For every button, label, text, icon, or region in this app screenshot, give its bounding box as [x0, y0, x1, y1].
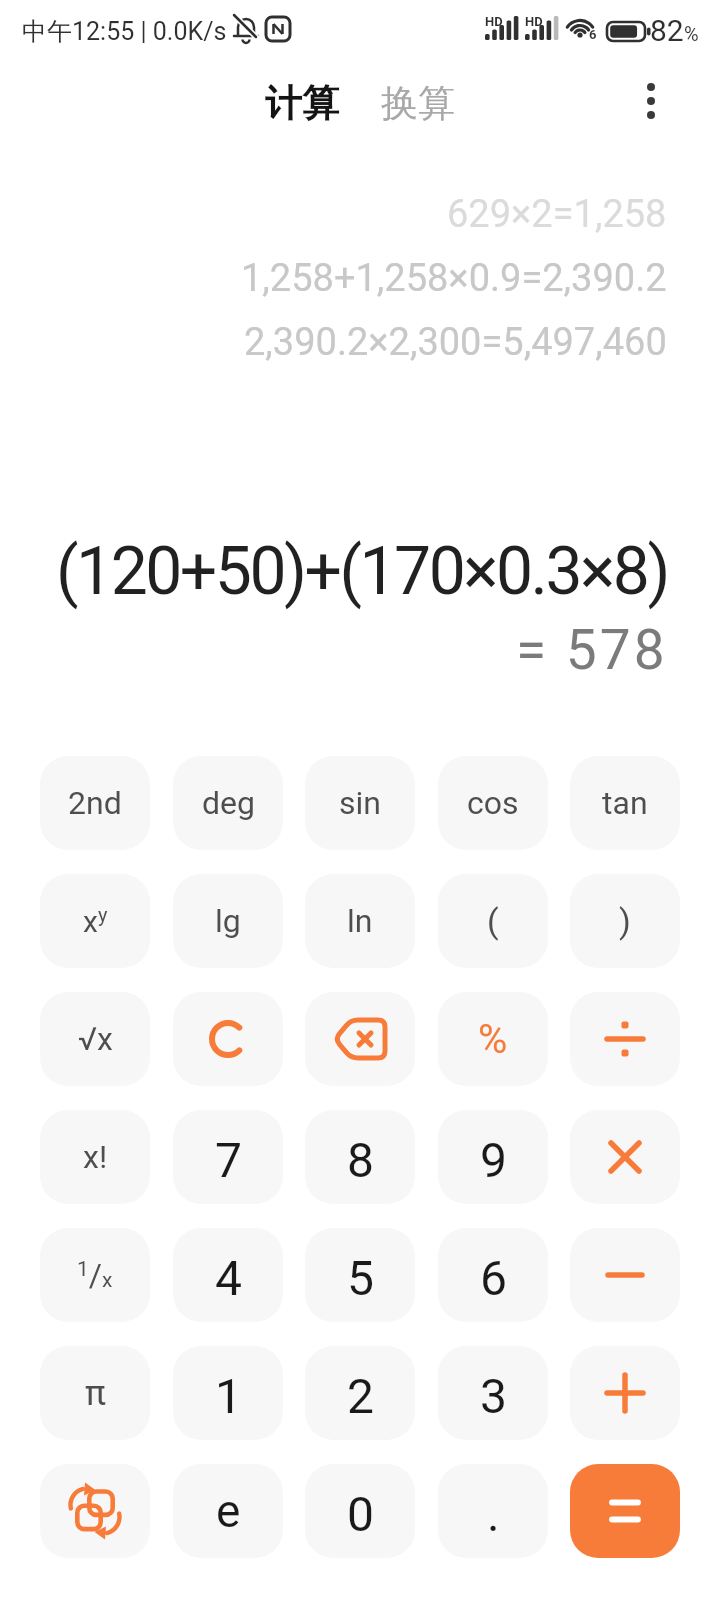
- staticText: sin: [339, 784, 381, 822]
- staticText: π: [85, 1373, 106, 1414]
- staticText: 1,258+1,258×0.9=2,390.2: [241, 256, 667, 301]
- button[interactable]: 8: [305, 1110, 415, 1204]
- button[interactable]: [570, 1464, 680, 1558]
- staticText: HD: [485, 14, 503, 29]
- button[interactable]: 9: [438, 1110, 548, 1204]
- staticText: 6: [589, 27, 597, 42]
- staticText: deg: [202, 784, 255, 822]
- button[interactable]: √x: [40, 992, 150, 1086]
- staticText: 计算: [265, 80, 339, 127]
- staticText: 629×2=1,258: [447, 192, 667, 237]
- staticText: 0: [347, 1486, 374, 1542]
- staticText: 1/x: [77, 1256, 113, 1294]
- staticText: 2: [347, 1368, 374, 1424]
- button[interactable]: .: [438, 1464, 548, 1558]
- staticText: e: [216, 1484, 241, 1538]
- button[interactable]: e: [173, 1464, 283, 1558]
- staticText: (120+50)+(170×0.3×8): [56, 533, 668, 610]
- button[interactable]: lg: [173, 874, 283, 968]
- staticText: lg: [215, 902, 241, 940]
- staticText: 5: [347, 1250, 374, 1306]
- button[interactable]: 1/x: [40, 1228, 150, 1322]
- button[interactable]: [630, 80, 672, 122]
- staticText: 9: [480, 1132, 507, 1188]
- button[interactable]: [570, 992, 680, 1086]
- button[interactable]: deg: [173, 756, 283, 850]
- button[interactable]: ): [570, 874, 680, 968]
- button[interactable]: 2nd: [40, 756, 150, 850]
- staticText: (: [487, 901, 499, 941]
- staticText: 6: [480, 1250, 507, 1306]
- button[interactable]: π: [40, 1346, 150, 1440]
- staticText: %: [478, 1016, 508, 1063]
- staticText: 1: [215, 1368, 242, 1424]
- staticText: xy: [83, 903, 108, 939]
- button[interactable]: 7: [173, 1110, 283, 1204]
- staticText: 3: [480, 1368, 507, 1424]
- button[interactable]: [570, 1228, 680, 1322]
- staticText: 7: [215, 1132, 242, 1188]
- staticText: x!: [83, 1138, 108, 1176]
- button[interactable]: (: [438, 874, 548, 968]
- staticText: .: [487, 1486, 500, 1542]
- button[interactable]: sin: [305, 756, 415, 850]
- staticText: ): [619, 901, 631, 941]
- button[interactable]: 计算: [265, 80, 339, 127]
- button[interactable]: 2: [305, 1346, 415, 1440]
- button[interactable]: 换算: [381, 80, 455, 127]
- button[interactable]: tan: [570, 756, 680, 850]
- staticText: tan: [602, 784, 648, 822]
- staticText: 2nd: [68, 784, 122, 822]
- staticText: HD: [525, 14, 543, 29]
- staticText: = 578: [516, 618, 668, 682]
- button[interactable]: cos: [438, 756, 548, 850]
- staticText: cos: [467, 784, 519, 822]
- staticText: 8: [347, 1132, 374, 1188]
- button[interactable]: 3: [438, 1346, 548, 1440]
- staticText: %: [684, 22, 699, 45]
- button[interactable]: x!: [40, 1110, 150, 1204]
- button[interactable]: [570, 1346, 680, 1440]
- staticText: ln: [347, 902, 373, 940]
- staticText: 4: [215, 1250, 242, 1306]
- button[interactable]: [570, 1110, 680, 1204]
- button[interactable]: [173, 992, 283, 1086]
- button[interactable]: 4: [173, 1228, 283, 1322]
- staticText: 82: [650, 13, 684, 48]
- button[interactable]: ln: [305, 874, 415, 968]
- button[interactable]: 6: [438, 1228, 548, 1322]
- button[interactable]: xy: [40, 874, 150, 968]
- button[interactable]: %: [438, 992, 548, 1086]
- button[interactable]: 5: [305, 1228, 415, 1322]
- staticText: 2,390.2×2,300=5,497,460: [244, 320, 667, 365]
- staticText: 换算: [381, 80, 455, 127]
- staticText: 中午12:55 | 0.0K/s: [22, 16, 227, 47]
- button[interactable]: 0: [305, 1464, 415, 1558]
- button[interactable]: [40, 1464, 150, 1558]
- button[interactable]: [305, 992, 415, 1086]
- button[interactable]: 1: [173, 1346, 283, 1440]
- staticText: √x: [78, 1020, 113, 1058]
